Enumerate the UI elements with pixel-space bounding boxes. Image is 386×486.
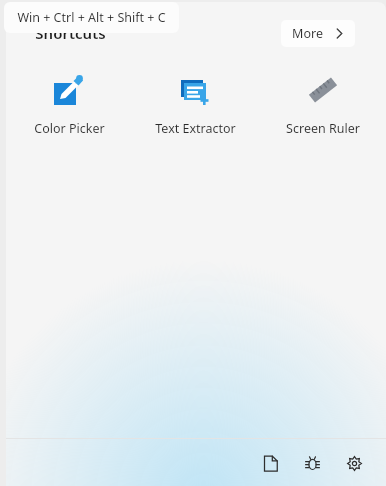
staticText: Text Extractor [155,120,236,137]
button[interactable]: Screen Ruler [259,64,386,143]
button[interactable]: Report a bug [298,449,326,477]
button[interactable]: Documentation [256,449,284,477]
staticText: Shortcuts [35,23,106,43]
button[interactable]: Color Picker [6,64,132,143]
button[interactable]: More [281,20,355,47]
button[interactable]: Settings [340,449,368,477]
staticText: More [292,25,323,42]
staticText: Color Picker [34,120,105,137]
staticText: Win + Ctrl + Alt + Shift + C [17,9,166,26]
staticText: Screen Ruler [286,120,360,137]
button[interactable]: Text Extractor [132,64,259,143]
